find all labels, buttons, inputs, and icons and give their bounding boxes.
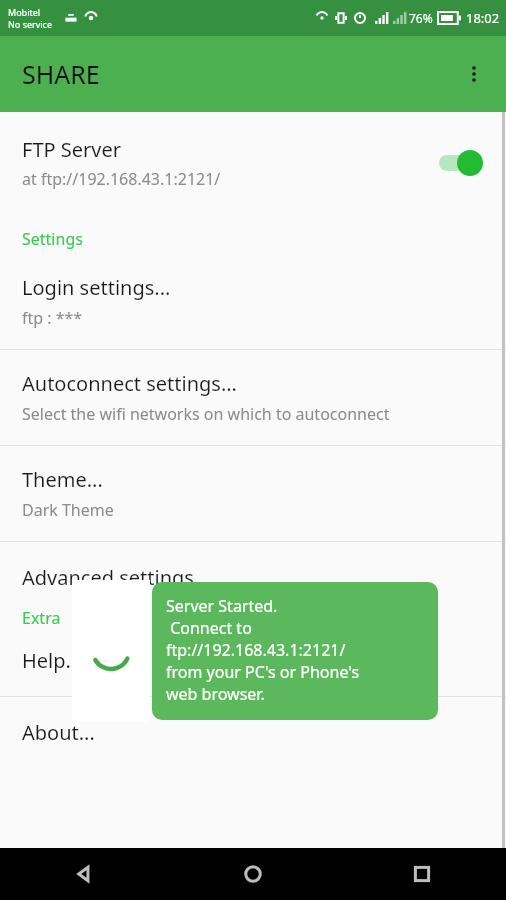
staticText: Select the wifi networks on which to aut… <box>22 403 390 425</box>
staticText: at ftp://192.168.43.1:2121/ <box>22 168 221 190</box>
button[interactable]: FTP Server <box>0 112 506 212</box>
staticText: 76% <box>409 10 433 26</box>
button[interactable]: More options <box>450 50 498 98</box>
button[interactable]: Help... <box>0 633 506 696</box>
button[interactable]: Login settings... <box>0 254 506 349</box>
staticText: 18:02 <box>466 9 500 27</box>
staticText: Theme... <box>22 466 103 493</box>
staticText: from your PC's or Phone's <box>166 661 360 683</box>
staticText: ftp : *** <box>22 307 83 329</box>
button[interactable]: Advanced settings... <box>0 542 506 595</box>
button[interactable]: About... <box>0 697 506 768</box>
button[interactable]: Theme... <box>0 446 506 541</box>
staticText: Settings <box>22 228 83 250</box>
staticText: No service <box>8 18 53 30</box>
staticText: Help... <box>22 647 82 674</box>
staticText: Dark Theme <box>22 499 114 521</box>
button[interactable]: Home <box>168 848 337 900</box>
button[interactable]: Recent apps <box>337 848 506 900</box>
staticText: Autoconnect settings... <box>22 370 237 397</box>
staticText: Login settings... <box>22 274 171 301</box>
staticText: SHARE <box>22 57 100 91</box>
staticText: ftp://192.168.43.1:2121/ <box>166 639 346 661</box>
staticText: FTP Server <box>22 136 122 163</box>
button[interactable]: Autoconnect settings... <box>0 350 506 445</box>
staticText: Extra <box>22 607 61 629</box>
staticText: web browser. <box>166 683 265 705</box>
staticText: Server Started. <box>166 595 278 617</box>
staticText: About... <box>22 719 95 746</box>
staticText: Advanced settings... <box>22 564 210 591</box>
staticText: Connect to <box>166 617 252 639</box>
button[interactable]: Back <box>0 848 168 900</box>
staticText: Mobitel <box>8 6 41 18</box>
